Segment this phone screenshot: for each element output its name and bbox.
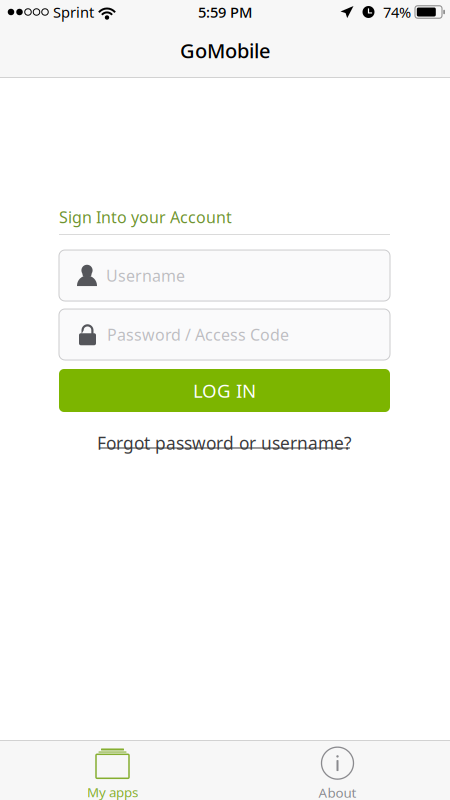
staticText: Forgot password or username? <box>97 431 352 454</box>
button[interactable]: Password / Access Code <box>59 309 390 360</box>
staticText: Sprint <box>53 2 94 22</box>
staticText: Username <box>106 265 185 286</box>
button[interactable]: LOG IN <box>59 369 390 412</box>
button[interactable]: My apps <box>0 741 225 800</box>
staticText: My apps <box>87 783 138 800</box>
button[interactable]: About <box>225 741 450 800</box>
button[interactable]: Username <box>59 250 390 301</box>
staticText: Password / Access Code <box>107 324 289 345</box>
staticText: 5:59 PM <box>198 2 252 22</box>
staticText: 74% <box>383 2 411 22</box>
staticText: Sign Into your Account <box>59 206 232 228</box>
staticText: GoMobile <box>180 37 270 64</box>
staticText: LOG IN <box>193 378 256 403</box>
button[interactable]: Forgot password or username? <box>59 432 390 454</box>
staticText: About <box>318 784 356 800</box>
